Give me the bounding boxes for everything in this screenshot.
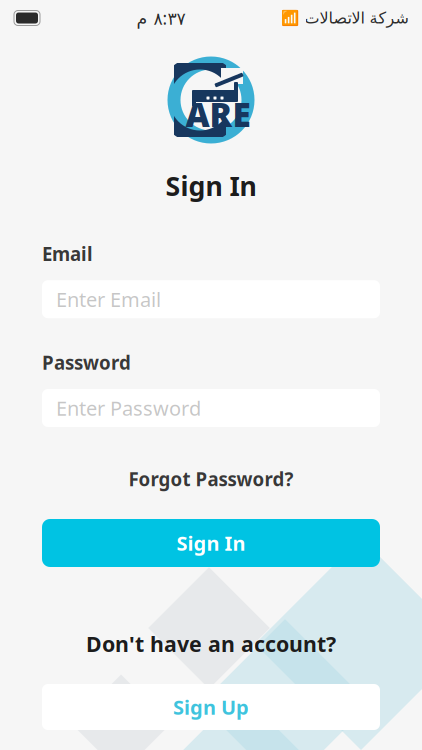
button[interactable]: Forgot Password?: [42, 467, 380, 491]
staticText: Sign In: [165, 168, 256, 203]
button[interactable]: Enter Email: [42, 280, 380, 318]
staticText: Email: [42, 241, 93, 266]
staticText: 📶: [281, 10, 299, 26]
staticText: ٨:٣٧ م: [136, 6, 185, 29]
button[interactable]: Enter Password: [42, 389, 380, 427]
staticText: Enter Email: [56, 286, 161, 312]
button[interactable]: Sign In: [42, 519, 380, 567]
staticText: ARE: [185, 92, 250, 136]
staticText: Sign Up: [173, 694, 249, 720]
staticText: Sign In: [176, 530, 245, 556]
staticText: Password: [42, 350, 131, 375]
button[interactable]: Sign Up: [42, 684, 380, 730]
staticText: شركة الاتصالات: [304, 9, 408, 27]
staticText: Enter Password: [56, 395, 201, 421]
staticText: Don't have an account?: [86, 630, 336, 658]
staticText: Forgot Password?: [128, 467, 293, 491]
